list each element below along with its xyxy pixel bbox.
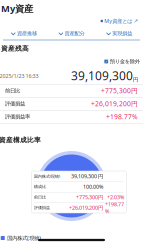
- staticText: ↗: [133, 18, 137, 24]
- staticText: 資産推移: [17, 30, 37, 37]
- staticText: 39,109,300: [71, 67, 133, 83]
- button[interactable]: ✓: [104, 58, 140, 65]
- staticText: +198.77%: [106, 112, 138, 121]
- staticText: 実現損益: [112, 30, 132, 37]
- staticText: 国内株式(現物): [34, 174, 60, 179]
- staticText: 国内株式(現物): [7, 234, 41, 242]
- staticText: 前日比: [5, 87, 20, 94]
- button[interactable]: My資産とは: [100, 17, 137, 25]
- staticText: +26,019,200円: [69, 204, 103, 211]
- staticText: +775,300円: [76, 194, 103, 201]
- staticText: +198.77%: [105, 201, 124, 215]
- staticText: 39,109,300 円: [71, 173, 103, 180]
- staticText: 前日比: [34, 195, 46, 200]
- button[interactable]: 実現損益: [95, 29, 143, 37]
- staticText: 資産構成比率: [0, 136, 41, 144]
- staticText: +2.03%: [107, 194, 124, 201]
- staticText: 構成比: [34, 184, 46, 189]
- button[interactable]: 資産推移: [0, 29, 48, 37]
- staticText: ✓: [105, 59, 108, 64]
- staticText: 資産残高: [1, 44, 29, 53]
- staticText: My資産とは: [104, 17, 132, 24]
- staticText: +775,300円: [101, 86, 138, 95]
- staticText: 評価損益: [5, 100, 25, 107]
- staticText: 円: [133, 76, 138, 83]
- staticText: 2025/1/23 16:33: [0, 72, 38, 80]
- staticText: 資産配分: [65, 30, 85, 37]
- staticText: 預り金を除外: [110, 58, 140, 65]
- button[interactable]: 国内株式(現物): [1, 234, 41, 242]
- staticText: 評価損益率: [5, 113, 30, 120]
- staticText: My資産: [1, 2, 33, 15]
- staticText: 評価損益: [34, 205, 50, 210]
- button[interactable]: 資産配分: [48, 29, 95, 37]
- staticText: 100.00%: [83, 183, 103, 190]
- staticText: +26,019,200円: [91, 99, 138, 108]
